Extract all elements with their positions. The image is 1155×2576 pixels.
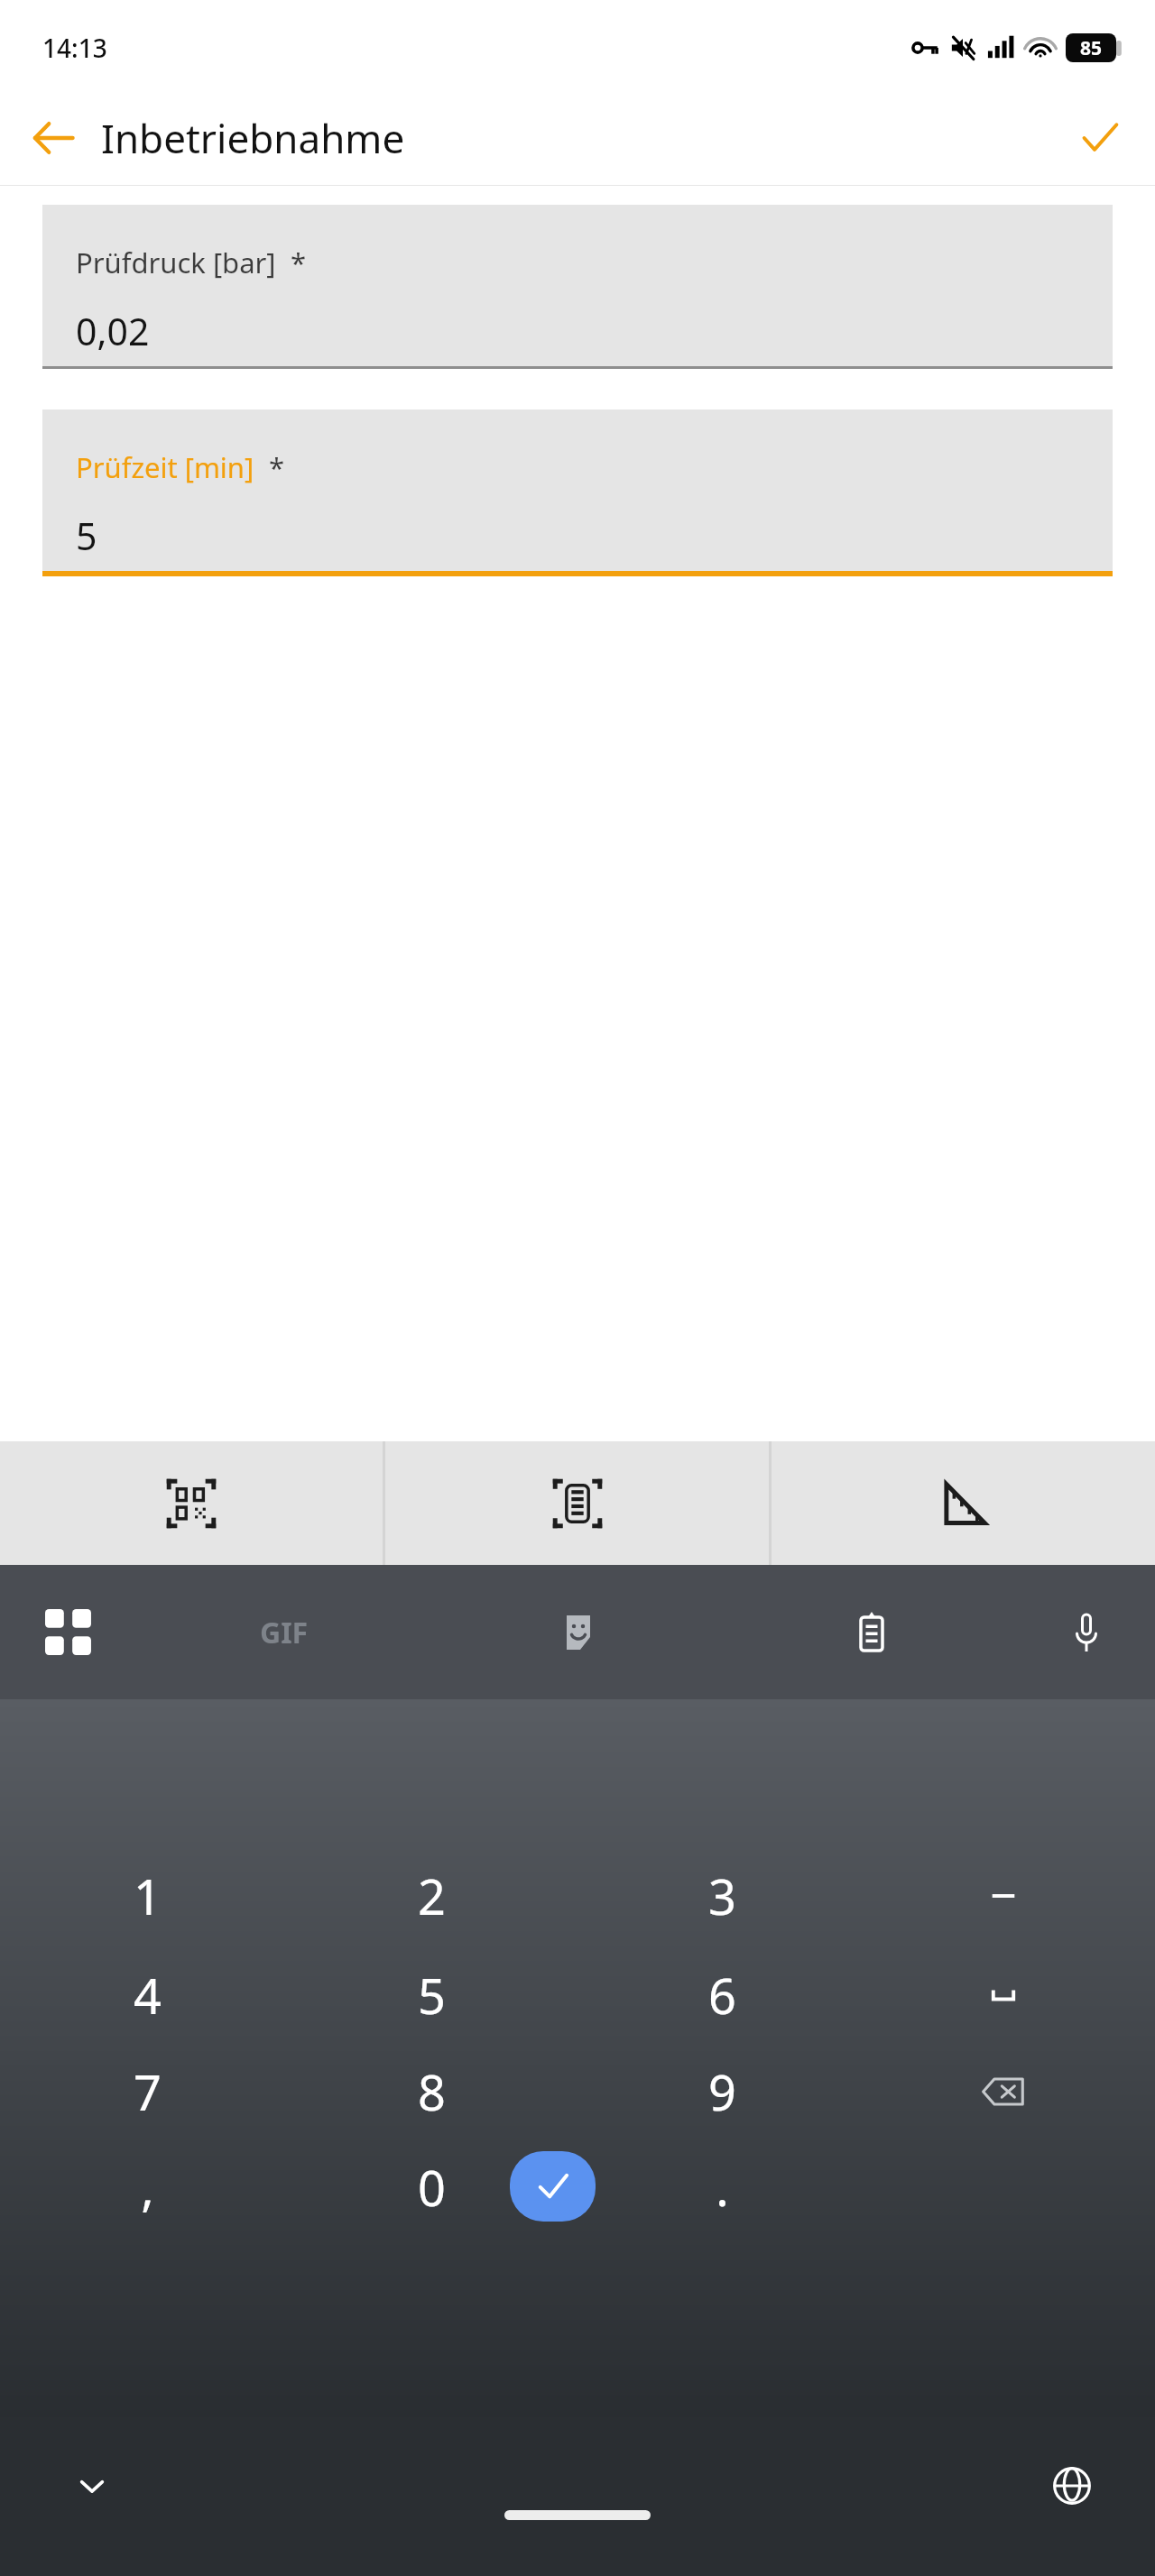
button[interactable]: Prüfdruck [bar] (42, 205, 1113, 369)
button[interactable]: Confirm (1063, 101, 1137, 175)
button[interactable]: 3 (650, 1846, 794, 1946)
staticText: 2 (418, 1863, 446, 1929)
staticText: . (716, 2154, 729, 2221)
staticText: 1 (134, 1863, 162, 1929)
staticText: GIF (260, 1613, 309, 1652)
button[interactable]: Voice input (1018, 1565, 1155, 1699)
staticText: Prüfdruck [bar] (76, 244, 276, 281)
staticText: 5 (418, 1962, 446, 2029)
button[interactable]: Scan barcode (385, 1441, 769, 1565)
button[interactable]: 2 (359, 1846, 504, 1946)
button[interactable]: . (650, 2138, 794, 2237)
staticText: 3 (708, 1863, 736, 1929)
button[interactable]: Change language (1027, 2441, 1117, 2531)
button[interactable]: Backspace (931, 2042, 1076, 2141)
staticText: Prüfzeit [min] (76, 448, 254, 486)
staticText: 0 (418, 2154, 446, 2221)
button[interactable]: 4 (75, 1946, 219, 2045)
staticText: 9 (708, 2058, 736, 2125)
staticText: 7 (134, 2058, 162, 2125)
staticText: 85 (1080, 35, 1103, 61)
button[interactable]: 6 (650, 1946, 794, 2045)
button[interactable]: Back (16, 101, 90, 175)
button[interactable]: 7 (75, 2042, 219, 2141)
button[interactable]: 0 (359, 2138, 504, 2237)
button[interactable]: Space (931, 1946, 1076, 2045)
button[interactable]: 1 (75, 1846, 219, 1946)
staticText: , (141, 2154, 154, 2221)
staticText: 6 (708, 1962, 736, 2029)
button[interactable]: Minus (931, 1846, 1076, 1946)
staticText: 8 (418, 2058, 446, 2125)
staticText: 0,02 (76, 306, 150, 356)
button[interactable]: 8 (359, 2042, 504, 2141)
button[interactable]: 9 (650, 2042, 794, 2141)
button[interactable]: Clipboard (725, 1565, 1018, 1699)
button[interactable]: Keyboard options (0, 1565, 137, 1699)
staticText: 14:13 (42, 31, 107, 65)
button[interactable]: 5 (359, 1946, 504, 2045)
button[interactable]: Scan QR code (0, 1441, 383, 1565)
button[interactable]: Stickers (431, 1565, 725, 1699)
button[interactable]: GIF (137, 1565, 431, 1699)
staticText: * (254, 448, 285, 486)
button[interactable]: Measure (772, 1441, 1155, 1565)
button[interactable]: , (75, 2138, 219, 2237)
staticText: 5 (76, 511, 97, 561)
button[interactable]: Prüfzeit [min] (42, 409, 1113, 576)
button[interactable]: Enter (510, 2151, 596, 2222)
staticText: Inbetriebnahme (101, 111, 405, 165)
staticText: 4 (134, 1962, 162, 2029)
button[interactable]: Hide keyboard (47, 2441, 137, 2531)
staticText: * (276, 244, 307, 281)
